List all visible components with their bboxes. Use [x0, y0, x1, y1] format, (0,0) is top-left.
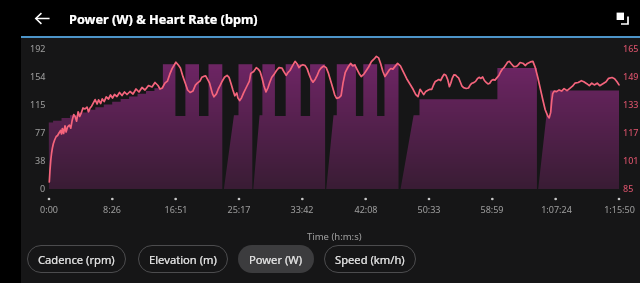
staticText: 115 — [30, 98, 46, 110]
staticText: 1:07:24 — [541, 203, 572, 215]
staticText: 101 — [623, 154, 639, 166]
staticText: Time (h:m:s) — [307, 230, 362, 242]
staticText: 42:08 — [354, 203, 378, 215]
staticText: 85 — [623, 182, 634, 194]
button[interactable]: Cadence (rpm) — [27, 245, 126, 273]
staticText: 0 — [40, 182, 46, 194]
staticText: 133 — [623, 98, 639, 110]
staticText: 154 — [30, 70, 46, 82]
staticText: 38 — [35, 154, 46, 166]
staticText: 25:17 — [227, 203, 251, 215]
staticText: 16:51 — [164, 203, 188, 215]
staticText: Cadence (rpm) — [38, 252, 115, 267]
staticText: 33:42 — [290, 203, 314, 215]
staticText: 1:15:50 — [604, 203, 635, 215]
staticText: Elevation (m) — [149, 252, 217, 267]
staticText: 0:00 — [40, 203, 58, 215]
button[interactable]: Navigate up — [25, 1, 59, 35]
staticText: 165 — [623, 42, 639, 54]
staticText: Speed (km/h) — [335, 252, 405, 267]
staticText: 50:33 — [417, 203, 441, 215]
staticText: 117 — [623, 126, 639, 138]
staticText: 149 — [623, 70, 639, 82]
staticText: Power (W) & Heart Rate (bpm) — [69, 10, 258, 27]
staticText: 77 — [35, 126, 46, 138]
button[interactable]: Picture in picture — [607, 3, 637, 33]
staticText: Power (W) — [249, 252, 303, 267]
button[interactable]: Elevation (m) — [138, 245, 228, 273]
button[interactable]: Power (W) — [238, 245, 314, 273]
staticText: 58:59 — [480, 203, 504, 215]
staticText: 8:26 — [103, 203, 121, 215]
staticText: 192 — [30, 42, 46, 54]
button[interactable]: Speed (km/h) — [324, 245, 416, 273]
